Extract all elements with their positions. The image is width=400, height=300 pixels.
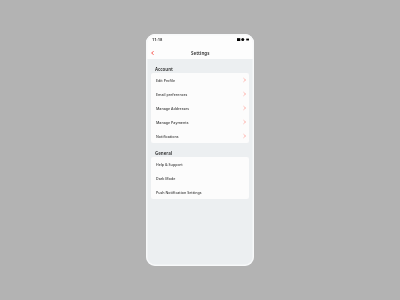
button[interactable]: Help & Support bbox=[151, 157, 249, 171]
button[interactable]: Dark Mode bbox=[151, 171, 249, 185]
staticText: Manage Addresses bbox=[156, 106, 190, 111]
button[interactable]: Push Notification Settings bbox=[151, 185, 249, 199]
button[interactable]: Back bbox=[148, 48, 157, 57]
staticText: Email preferences bbox=[156, 92, 188, 97]
staticText: Help & Support bbox=[156, 162, 183, 167]
staticText: Account bbox=[155, 66, 173, 72]
button[interactable]: Notifications bbox=[151, 129, 249, 143]
staticText: Dark Mode bbox=[156, 176, 176, 181]
button[interactable]: Edit Profile bbox=[151, 73, 249, 87]
staticText: Edit Profile bbox=[156, 78, 176, 83]
staticText: General bbox=[155, 150, 173, 156]
button[interactable]: Manage Payments bbox=[151, 115, 249, 129]
button[interactable]: Email preferences bbox=[151, 87, 249, 101]
staticText: Notifications bbox=[156, 134, 179, 139]
staticText: Push Notification Settings bbox=[156, 190, 202, 195]
staticText: Settings bbox=[191, 50, 210, 56]
staticText: Manage Payments bbox=[156, 120, 189, 125]
staticText: 11:18 bbox=[152, 37, 163, 42]
button[interactable]: Manage Addresses bbox=[151, 101, 249, 115]
